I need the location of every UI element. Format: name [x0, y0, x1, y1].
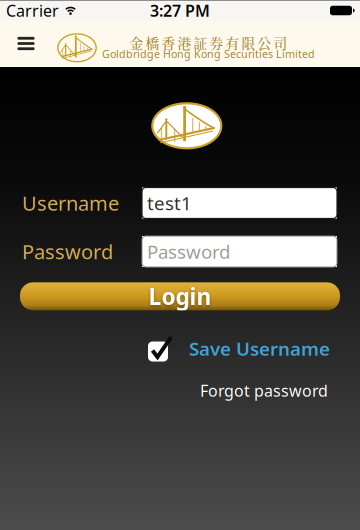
- staticText: Login: [148, 281, 211, 311]
- textField[interactable]: Password: [147, 239, 235, 264]
- staticText: Carrier: [6, 0, 59, 21]
- button[interactable]: Forgot password: [200, 380, 328, 401]
- button[interactable]: Save Username: [148, 335, 330, 361]
- staticText: 3:27 PM: [150, 0, 210, 21]
- staticText: Username: [22, 190, 119, 216]
- staticText: 金橋香港証券有限公司: [129, 33, 287, 52]
- staticText: Save Username: [189, 336, 330, 361]
- staticText: Goldbridge Hong Kong Securities Limited: [102, 47, 315, 61]
- staticText: Password: [147, 239, 230, 264]
- staticText: test1: [147, 191, 192, 215]
- button[interactable]: Login: [20, 282, 340, 310]
- staticText: Forgot password: [200, 380, 328, 401]
- staticText: Password: [22, 238, 113, 265]
- button[interactable]: Menu: [6, 23, 46, 63]
- textField[interactable]: test1: [147, 191, 235, 215]
